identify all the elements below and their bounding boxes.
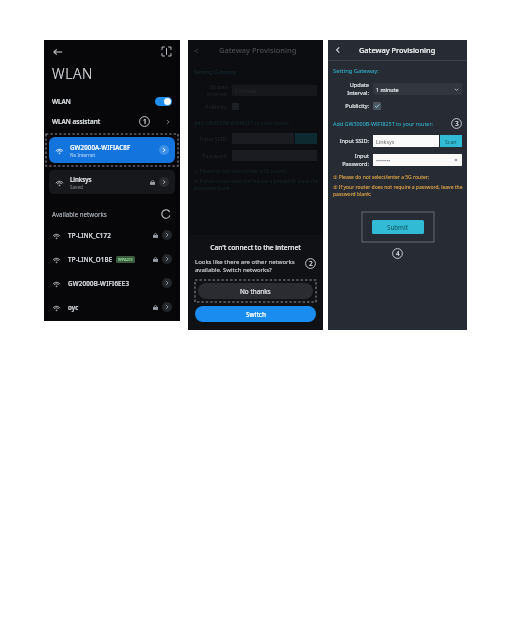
staticText: Input Password:	[333, 152, 369, 168]
staticText: Setting Gateway	[194, 68, 237, 76]
staticText: No thanks	[240, 287, 271, 296]
staticText: Available networks	[52, 210, 107, 218]
staticText: ① Please do not select/enter a 5G router…	[194, 168, 287, 175]
button[interactable]: Submit	[372, 220, 424, 234]
staticText: 4	[396, 249, 400, 258]
button[interactable]: oyc	[44, 295, 180, 319]
button[interactable]: 1 minute	[373, 83, 462, 95]
staticText: •••••••	[376, 157, 391, 164]
button[interactable]: Back	[332, 44, 344, 56]
button[interactable]: GW2000A-WIFIAC8F	[49, 137, 175, 163]
staticText: TP-LINK_C172	[68, 231, 112, 239]
staticText: Gateway Provisioning	[359, 45, 436, 55]
button[interactable]: Scan QR code	[159, 44, 173, 58]
staticText: Input SSID:	[333, 137, 369, 145]
staticText: WLAN	[52, 97, 71, 106]
staticText: Switch	[246, 310, 266, 319]
staticText: WPA2/3	[118, 257, 133, 262]
button[interactable]: No thanks	[198, 283, 313, 299]
staticText: Linksys	[70, 175, 92, 183]
staticText: Publicity:	[194, 103, 228, 110]
staticText: Update Interval:	[194, 83, 228, 97]
button[interactable]: Linksys	[373, 135, 439, 147]
staticText: No Internet	[70, 152, 96, 158]
staticText: <	[194, 45, 199, 56]
staticText: 1	[143, 117, 147, 126]
staticText: Scan	[445, 138, 457, 145]
staticText: GW2000B-WIFI6EE3	[68, 279, 130, 287]
staticText: 1 minute	[235, 87, 257, 94]
staticText: 3	[455, 119, 459, 128]
staticText: Setting Gateway:	[333, 67, 379, 75]
button[interactable]: WLAN assistant	[44, 111, 180, 132]
staticText: Password:	[194, 152, 228, 159]
button[interactable]: Linksys	[49, 170, 175, 194]
button[interactable]: TP-LINK_O1BE	[44, 247, 180, 271]
staticText: GW2000A-WIFIAC8F	[70, 143, 131, 151]
staticText: 1 minute	[376, 86, 399, 93]
staticText: WLAN assistant	[52, 117, 101, 126]
staticText: Saved	[70, 184, 83, 190]
button[interactable]: Switch	[195, 306, 316, 322]
staticText: Can't connect to the internet	[195, 243, 316, 252]
button[interactable]: Refresh	[160, 208, 172, 220]
staticText: ① Please do not select/enter a 5G router…	[333, 174, 430, 181]
staticText: Submit	[387, 223, 409, 231]
button[interactable]: •••••••	[373, 154, 462, 166]
button[interactable]: TP-LINK_C172	[44, 223, 180, 247]
staticText: Gateway Provisioning	[219, 45, 297, 55]
staticText: ② If your router does not require a pass…	[194, 178, 319, 192]
staticText: oyc	[68, 303, 79, 311]
staticText: TP-LINK_O1BE	[68, 255, 113, 263]
button[interactable]: Publicity checkbox	[373, 102, 381, 110]
staticText: Update Interval:	[333, 81, 369, 97]
staticText: Looks like there are other networks avai…	[195, 258, 305, 274]
staticText: Publicity:	[333, 102, 369, 110]
staticText: 2	[309, 259, 313, 268]
staticText: Add GW3000B-WIFI825T to your router:	[194, 119, 291, 126]
staticText: ② If your router does not require a pass…	[333, 184, 463, 198]
staticText: Add GW3000B-WIFI825T to your router:	[333, 120, 434, 127]
button[interactable]: Scan	[440, 135, 462, 147]
staticText: Linksys	[376, 138, 395, 145]
button[interactable]: Back	[51, 45, 64, 58]
staticText: Input SSID:	[194, 135, 228, 142]
button[interactable]: GW2000B-WIFI6EE3	[44, 271, 180, 295]
button[interactable]: WLAN	[44, 91, 180, 111]
staticText: WLAN	[52, 64, 93, 83]
